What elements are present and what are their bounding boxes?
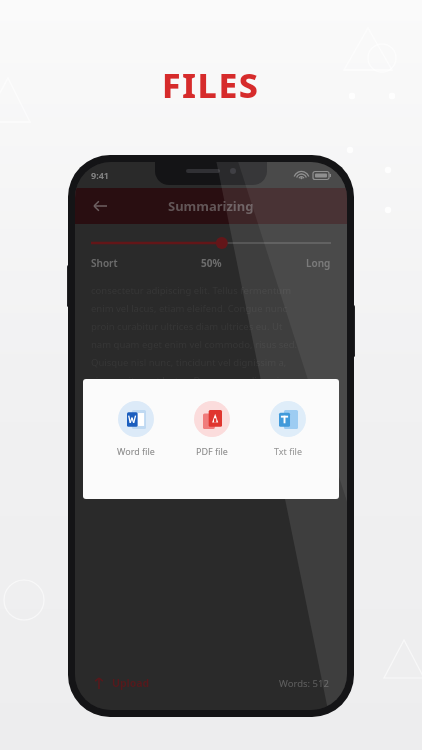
staticText: 50% bbox=[201, 256, 222, 270]
staticText: non. Vel tincidunt lacus ornare lobortis… bbox=[91, 410, 298, 423]
button[interactable]: Upload bbox=[93, 672, 150, 694]
staticText: Word file bbox=[117, 445, 155, 457]
staticText: sapien vulputate porta. Integer tempus q… bbox=[91, 392, 295, 405]
staticText: Long bbox=[306, 256, 331, 270]
staticText: Words: 512 bbox=[279, 677, 329, 690]
staticText: viverra sit amet lectus. Donec nec odio … bbox=[91, 374, 284, 387]
staticText: enim vel lacus, etiam eleifend. Congue n… bbox=[91, 302, 288, 315]
staticText: Upload bbox=[112, 676, 150, 690]
staticText: Quisque nisl nunc, tincidunt vel digniss… bbox=[91, 356, 287, 369]
staticText: FILES bbox=[162, 62, 260, 108]
staticText: proin curabitur ultrices diam ultrices e… bbox=[91, 320, 283, 333]
button[interactable]: Back bbox=[87, 193, 113, 219]
staticText: 9:41 bbox=[91, 169, 109, 181]
button[interactable] bbox=[91, 236, 331, 250]
button[interactable]: Word file bbox=[111, 401, 161, 457]
staticText: Short bbox=[91, 256, 118, 270]
staticText: Summarizing bbox=[168, 197, 254, 215]
staticText: consectetur adipiscing elit. Tellus ferm… bbox=[91, 284, 292, 297]
staticText: Txt file bbox=[274, 445, 302, 457]
staticText: nam quam eget enim vel commodo, risus se… bbox=[91, 338, 298, 351]
button[interactable]: Txt file bbox=[264, 401, 312, 457]
button[interactable]: PDF file bbox=[188, 401, 236, 457]
staticText: PDF file bbox=[196, 445, 228, 457]
